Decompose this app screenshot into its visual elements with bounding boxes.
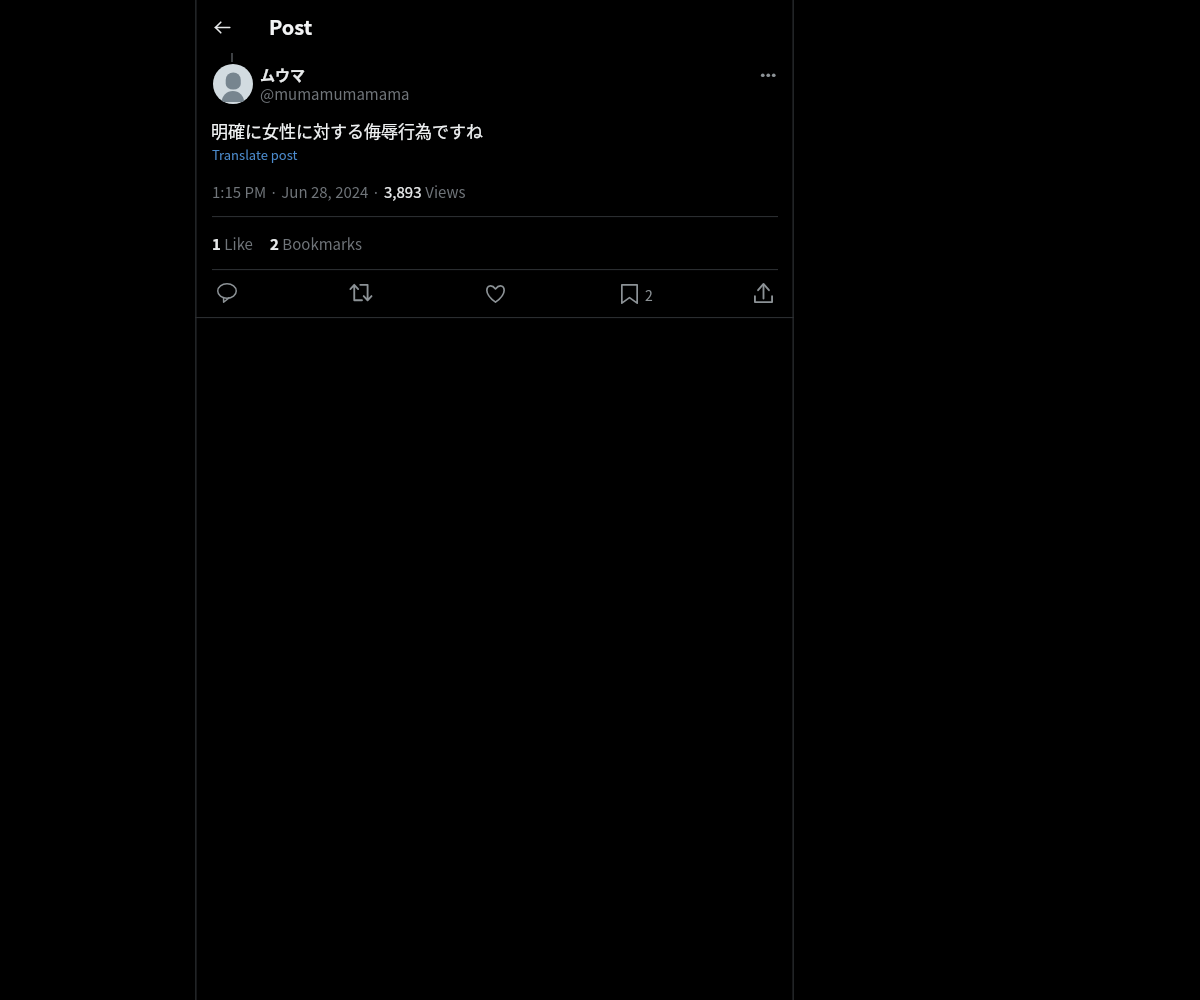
staticText: 1: [212, 233, 221, 255]
staticText: 明確に女性に対する侮辱行為ですね: [211, 118, 483, 143]
button[interactable]: Profile picture: [213, 64, 253, 104]
staticText: Post: [269, 12, 313, 41]
button[interactable]: Share: [746, 275, 781, 311]
button[interactable]: 1: [212, 233, 253, 255]
button[interactable]: Like: [478, 276, 513, 311]
button[interactable]: ムウマ: [260, 64, 306, 86]
button[interactable]: Repost: [342, 276, 380, 310]
staticText: 2: [645, 285, 653, 305]
staticText: Views: [422, 181, 466, 203]
button[interactable]: 2: [270, 233, 363, 255]
staticText: Bookmarks: [279, 233, 363, 255]
staticText: 1:15 PM · Jun 28, 2024 ·: [212, 181, 384, 203]
staticText: ムウマ: [260, 64, 306, 86]
button[interactable]: Reply: [209, 275, 245, 311]
button[interactable]: @mumamumamama: [260, 83, 410, 105]
staticText: Translate post: [212, 145, 298, 164]
staticText: Like: [221, 233, 253, 255]
staticText: @mumamumamama: [260, 83, 410, 105]
staticText: 2: [270, 233, 279, 255]
button[interactable]: Bookmark: [613, 276, 646, 312]
button[interactable]: More options: [751, 58, 785, 92]
button[interactable]: Back: [204, 11, 238, 45]
button[interactable]: Translate post: [212, 145, 298, 164]
staticText: 3,893: [384, 181, 422, 203]
